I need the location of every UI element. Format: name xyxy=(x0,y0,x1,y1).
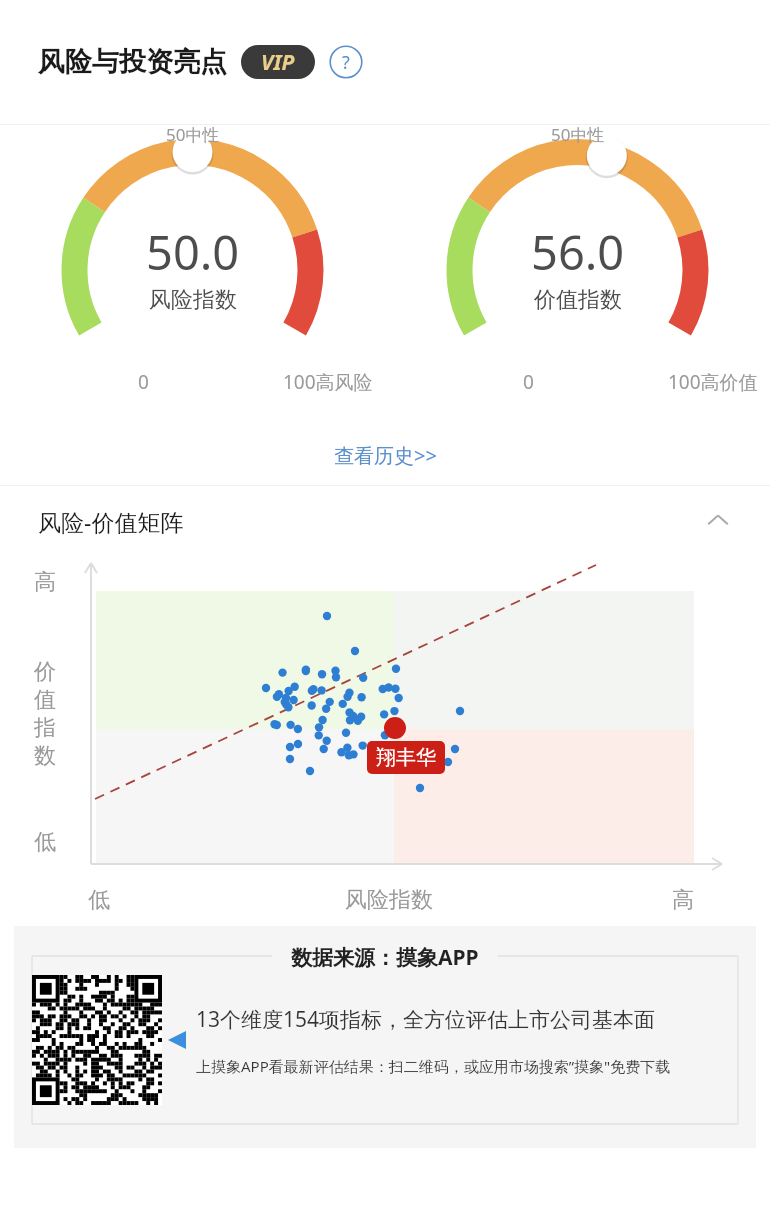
staticText: 50中性 xyxy=(551,123,605,146)
staticText: 指 xyxy=(34,714,56,742)
staticText: 价值指数 xyxy=(534,286,622,314)
staticText: 0 xyxy=(523,369,534,395)
button[interactable]: VIP xyxy=(241,45,315,79)
staticText: 50中性 xyxy=(166,123,220,146)
staticText: 13个维度154项指标，全方位评估上市公司基本面 xyxy=(196,1005,656,1034)
staticText: 100高风险 xyxy=(283,369,373,395)
staticText: 56.0 xyxy=(531,220,625,284)
staticText: 0 xyxy=(138,369,149,395)
other: Collapse xyxy=(704,507,732,535)
staticText: 价 xyxy=(34,658,56,686)
staticText: 风险指数 xyxy=(149,286,237,314)
staticText: VIP xyxy=(261,48,295,77)
staticText: 数 xyxy=(34,742,56,770)
button[interactable]: 翔丰华 xyxy=(376,745,436,770)
staticText: 值 xyxy=(34,686,56,714)
staticText: ? xyxy=(342,50,350,75)
button[interactable]: Help xyxy=(329,45,363,79)
staticText: 数据来源：摸象APP xyxy=(291,943,479,972)
staticText: 查看历史>> xyxy=(334,442,437,469)
staticText: 高 xyxy=(672,886,694,914)
staticText: 风险指数 xyxy=(345,886,433,914)
staticText: 翔丰华 xyxy=(376,745,436,770)
staticText: 低 xyxy=(88,886,110,914)
staticText: 高 xyxy=(34,568,56,596)
button[interactable]: 查看历史>> xyxy=(0,425,770,485)
staticText: 50.0 xyxy=(146,220,240,284)
staticText: 风险-价值矩阵 xyxy=(38,506,184,537)
staticText: 100高价值 xyxy=(668,369,758,395)
button[interactable]: 风险-价值矩阵 xyxy=(38,486,732,556)
staticText: 风险与投资亮点 xyxy=(38,45,227,79)
staticText: 低 xyxy=(34,828,56,856)
staticText: 上摸象APP看最新评估结果：扫二维码，或应用市场搜索”摸象"免费下载 xyxy=(196,1056,671,1076)
